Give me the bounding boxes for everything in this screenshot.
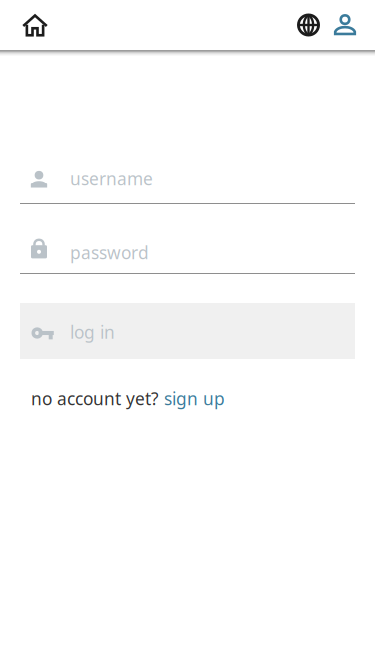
button[interactable]: Account: [323, 0, 367, 50]
button[interactable]: Home: [11, 0, 59, 50]
staticText: sign up: [164, 387, 225, 410]
button[interactable]: sign up: [164, 382, 225, 405]
button[interactable]: log in: [20, 303, 355, 359]
button[interactable]: Change language: [294, 0, 323, 50]
staticText: no account yet?: [31, 387, 164, 410]
staticText: log in: [70, 320, 115, 343]
staticText: username: [70, 167, 153, 190]
staticText: password: [70, 241, 149, 264]
